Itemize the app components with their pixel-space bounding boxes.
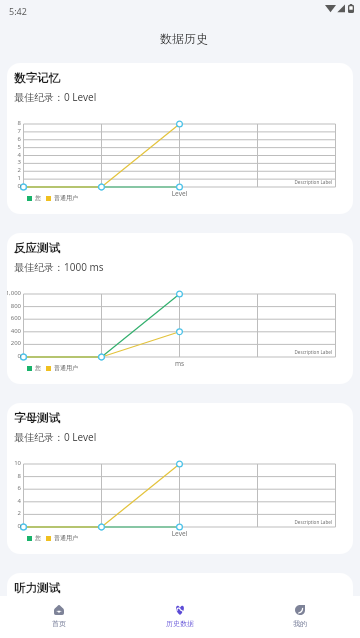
staticText: 普通用户: [54, 194, 78, 202]
staticText: 最佳纪录：0 Level: [14, 90, 97, 104]
staticText: 5: [7, 143, 21, 151]
staticText: 普通用户: [54, 534, 78, 542]
staticText: 字母测试: [14, 411, 60, 425]
staticText: 800: [7, 302, 21, 310]
staticText: Description Label: [257, 349, 332, 355]
staticText: 1: [7, 174, 21, 182]
staticText: 0: [7, 182, 21, 190]
staticText: 4: [7, 497, 21, 505]
staticText: 4: [7, 151, 21, 159]
staticText: 7: [7, 127, 21, 135]
staticText: 2: [7, 166, 21, 174]
staticText: 我的: [293, 619, 307, 628]
staticText: ms: [159, 359, 200, 368]
staticText: 0: [7, 352, 21, 360]
staticText: 普通用户: [54, 364, 78, 372]
staticText: 最佳纪录：0 Level: [14, 430, 97, 444]
staticText: 200: [7, 339, 21, 347]
staticText: 听力测试: [14, 581, 60, 595]
staticText: 3: [7, 158, 21, 166]
staticText: 10: [7, 459, 21, 467]
staticText: 5:42: [9, 5, 27, 17]
staticText: 2: [7, 509, 21, 517]
button[interactable]: 听力测试: [7, 573, 353, 638]
staticText: 8: [7, 119, 21, 127]
staticText: 数字记忆: [14, 71, 60, 85]
button[interactable]: 历史数据: [140, 596, 220, 638]
staticText: Level: [159, 529, 200, 538]
staticText: 您: [35, 364, 41, 372]
staticText: 首页: [52, 619, 66, 628]
staticText: Description Label: [257, 179, 332, 185]
staticText: 600: [7, 314, 21, 322]
staticText: 历史数据: [166, 619, 194, 628]
button[interactable]: 首页: [19, 596, 99, 638]
staticText: 您: [35, 534, 41, 542]
button[interactable]: 数字记忆: [7, 63, 353, 214]
staticText: 6: [7, 484, 21, 492]
staticText: 0: [7, 522, 21, 530]
button[interactable]: 我的: [260, 596, 340, 638]
staticText: 6: [7, 135, 21, 143]
staticText: 最佳纪录：1000 ms: [14, 260, 104, 274]
staticText: 8: [7, 472, 21, 480]
staticText: Level: [159, 189, 200, 198]
staticText: 1,000: [7, 289, 21, 297]
staticText: 400: [7, 327, 21, 335]
staticText: 您: [35, 194, 41, 202]
button[interactable]: 字母测试: [7, 403, 353, 554]
button[interactable]: 反应测试: [7, 233, 353, 384]
staticText: Description Label: [257, 519, 332, 525]
staticText: 反应测试: [14, 241, 60, 255]
staticText: 数据历史: [160, 31, 208, 46]
